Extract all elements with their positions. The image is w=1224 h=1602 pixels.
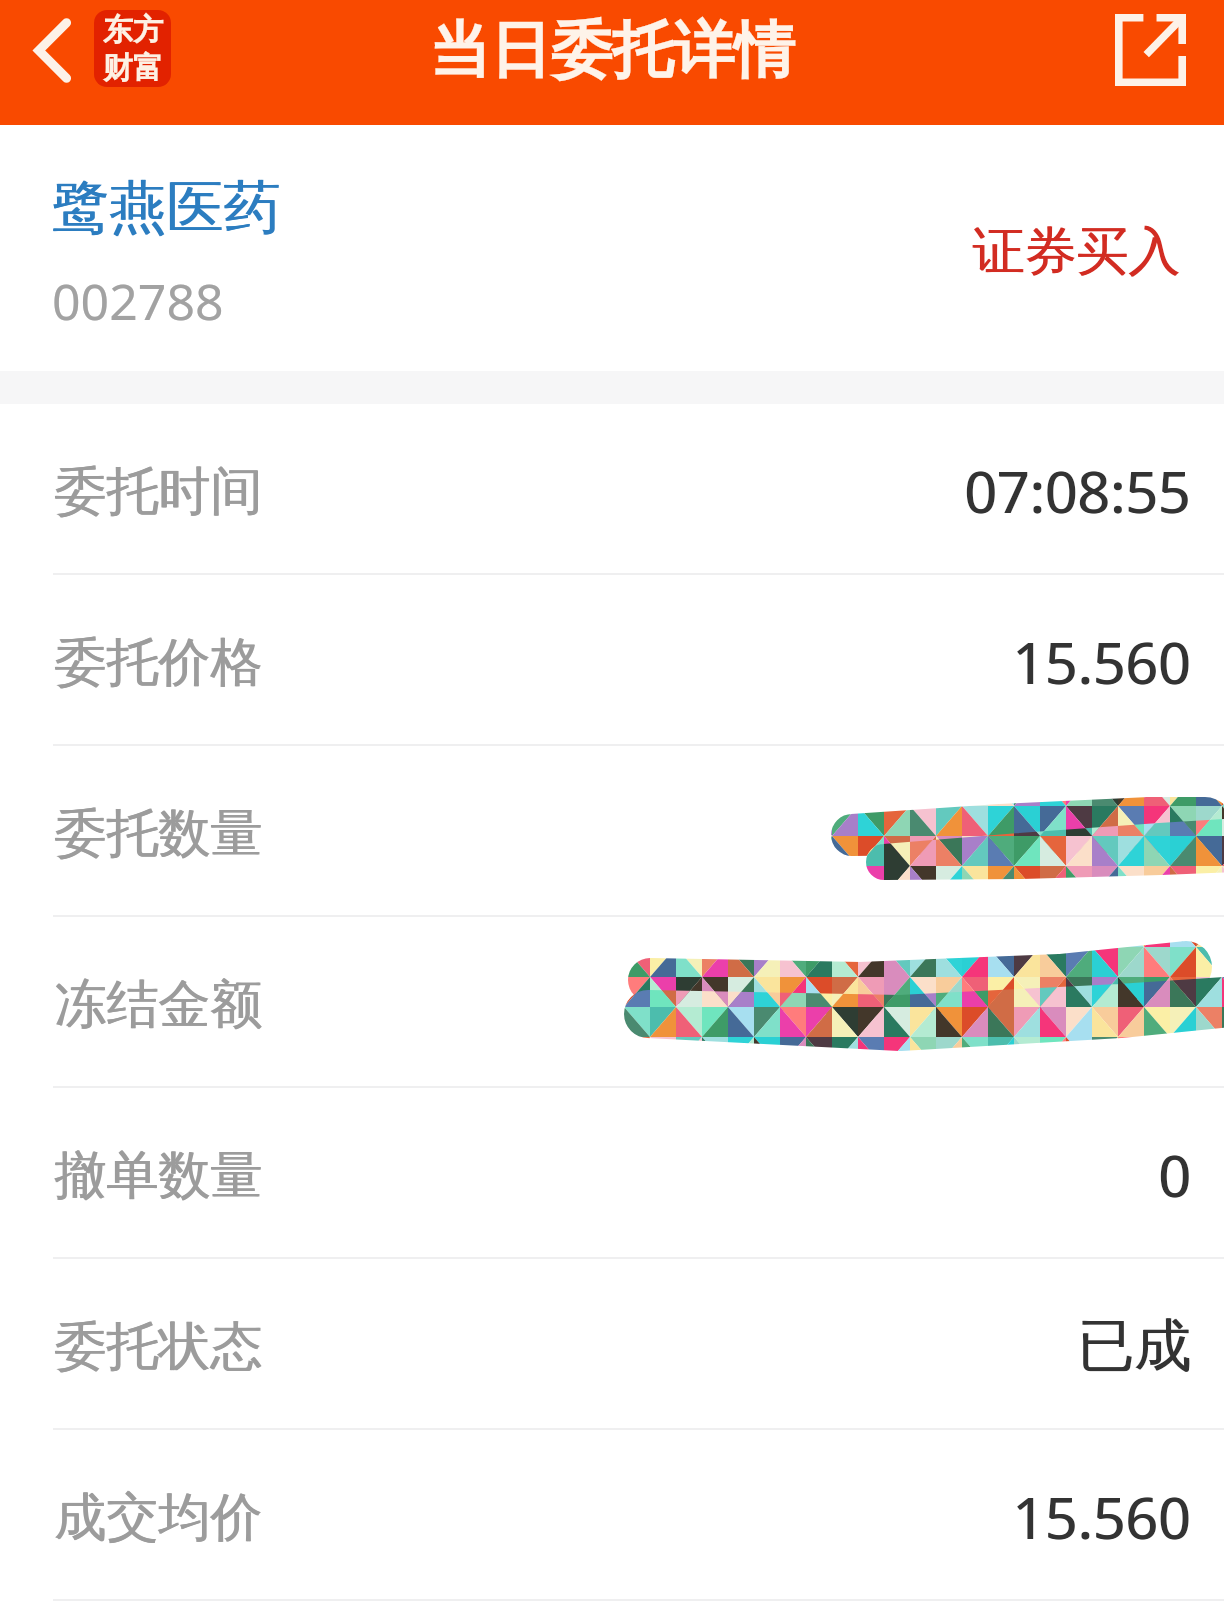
staticText: 证券买入 — [973, 219, 1181, 285]
staticText: 07:08:55 — [965, 452, 1192, 530]
staticText: 委托数量 — [55, 801, 263, 867]
staticText: 成交均价 — [55, 1485, 263, 1551]
staticText: 东方 — [103, 11, 163, 49]
staticText: 鹭燕医药 — [53, 172, 281, 244]
staticText: 委托价格 — [54, 630, 262, 696]
staticText: 委托数量 — [54, 801, 262, 867]
staticText: 当日委托详情 — [429, 12, 795, 89]
button[interactable]: Share — [1102, 2, 1198, 98]
button[interactable]: 撤单数量 — [0, 1088, 1224, 1259]
button[interactable]: 委托价格 — [0, 575, 1224, 746]
staticText: 委托价格 — [55, 630, 263, 696]
staticText: 07:08:55 — [964, 452, 1191, 530]
button[interactable]: 东方 — [94, 10, 171, 87]
button[interactable]: 冻结金额 — [0, 917, 1224, 1088]
staticText: 15.560 — [1012, 623, 1191, 701]
staticText: 15.560 — [1013, 623, 1192, 701]
button[interactable]: 委托状态 — [0, 1259, 1224, 1430]
staticText: 撤单数量 — [55, 1143, 263, 1209]
staticText: 鹭燕医药 — [52, 172, 280, 244]
staticText: 15.560 — [1012, 1478, 1191, 1556]
staticText: 委托状态 — [55, 1314, 263, 1380]
button[interactable]: 委托数量 — [0, 746, 1224, 917]
button[interactable]: 委托时间 — [0, 404, 1224, 575]
staticText: 财富 — [103, 49, 163, 87]
button[interactable]: 成交均价 — [0, 1430, 1224, 1601]
staticText: 委托状态 — [54, 1314, 262, 1380]
staticText: 002788 — [52, 267, 224, 335]
staticText: 成交均价 — [54, 1485, 262, 1551]
staticText: 0 — [1159, 1136, 1192, 1214]
button[interactable]: Back — [8, 6, 96, 94]
staticText: 委托时间 — [55, 459, 263, 525]
staticText: 撤单数量 — [54, 1143, 262, 1209]
staticText: 已成 — [1078, 1310, 1192, 1382]
staticText: 冻结金额 — [55, 972, 263, 1038]
staticText: 冻结金额 — [54, 972, 262, 1038]
staticText: 证券买入 — [972, 219, 1180, 285]
staticText: 0 — [1158, 1136, 1191, 1214]
staticText: 已成 — [1077, 1310, 1191, 1382]
staticText: 委托时间 — [54, 459, 262, 525]
button[interactable]: 鹭燕医药 — [0, 125, 1224, 371]
staticText: 15.560 — [1013, 1478, 1192, 1556]
